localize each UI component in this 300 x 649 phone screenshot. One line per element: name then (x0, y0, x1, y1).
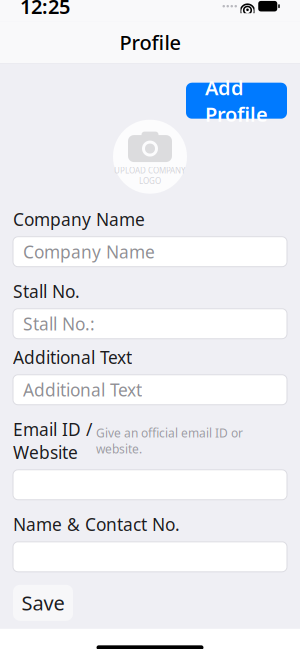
button[interactable]: Stall No.: (13, 309, 287, 339)
button[interactable] (13, 470, 287, 500)
staticText: Email ID / Website (13, 418, 92, 464)
button[interactable] (13, 542, 287, 572)
staticText: Give an official email ID or website. (96, 425, 243, 457)
button[interactable]: Save (13, 585, 73, 621)
staticText: Additional Text (23, 378, 142, 401)
staticText: Name & Contact No. (13, 513, 180, 536)
button[interactable]: Company Name (13, 237, 287, 267)
staticText: Additional Text (13, 346, 132, 369)
staticText: Stall No.: (23, 312, 95, 335)
button[interactable]: Additional Text (13, 375, 287, 405)
staticText: Add Profile (205, 74, 268, 127)
staticText: Save (21, 589, 64, 616)
staticText: UPLOAD COMPANY (114, 165, 186, 176)
staticText: 12:25 (20, 0, 70, 19)
staticText: Profile (119, 29, 180, 55)
staticText: Stall No. (13, 280, 80, 303)
button[interactable]: Upload company logo (113, 120, 187, 194)
staticText: Company Name (23, 240, 155, 263)
button[interactable]: Add Profile (186, 83, 287, 119)
staticText: LOGO (139, 176, 161, 186)
staticText: Company Name (13, 208, 145, 231)
